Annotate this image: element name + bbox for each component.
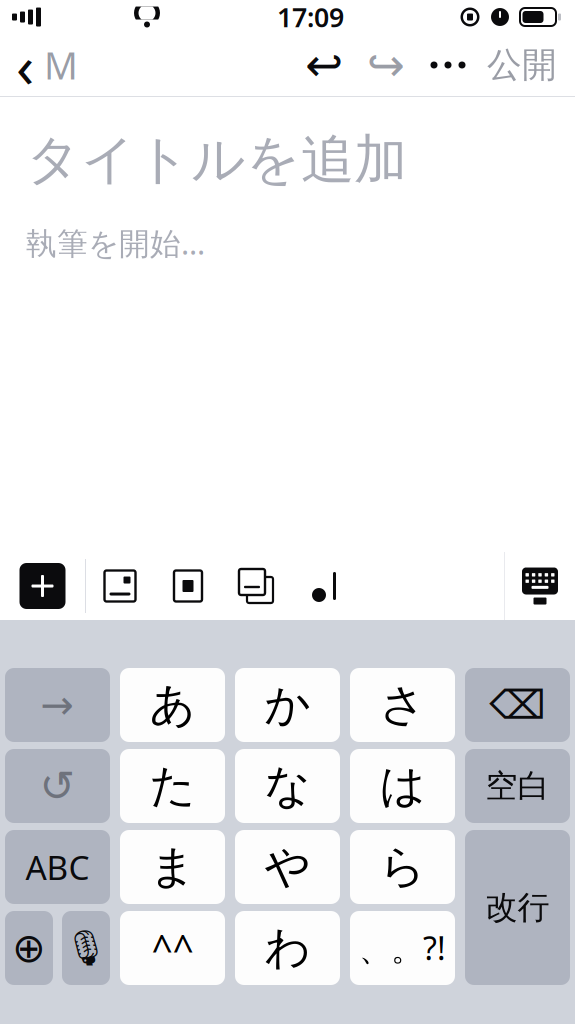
staticText: 執筆を開始... [26,222,205,263]
button[interactable]: わ [235,911,340,985]
button[interactable]: → [5,668,110,742]
button[interactable]: Add block [0,552,85,620]
staticText: ま [149,839,195,895]
button[interactable]: た [120,749,225,823]
button[interactable]: More options [417,34,479,96]
staticText: ‹ [16,26,34,104]
button[interactable]: 空白 [465,749,570,823]
staticText: ⊕ [12,925,46,971]
staticText: な [264,758,310,814]
button[interactable]: 🎙 [62,911,110,985]
staticText: ABC [25,845,89,889]
staticText: か [264,677,310,733]
staticText: ^^ [151,923,193,973]
button[interactable]: や [235,830,340,904]
button[interactable]: Redo [355,34,417,96]
button[interactable]: Hide keyboard [505,552,575,620]
button[interactable]: ら [350,830,455,904]
staticText: → [40,682,74,728]
button[interactable]: Insert audio [290,552,358,620]
button[interactable]: 公開 [479,34,575,96]
staticText: 空白 [485,766,549,806]
staticText: 🎙 [64,928,108,968]
button[interactable]: 改行 [465,830,570,985]
button[interactable]: Insert gallery [222,552,290,620]
button[interactable]: ^^ [120,911,225,985]
button[interactable]: あ [120,668,225,742]
staticText: 改行 [485,888,549,927]
staticText: さ [379,677,425,733]
button[interactable]: さ [350,668,455,742]
staticText: ら [379,839,425,895]
staticText: 公開 [487,44,557,86]
button[interactable]: ⊕ [5,911,53,985]
button[interactable]: Insert image [86,552,154,620]
staticText: 、。?! [359,927,446,969]
staticText: ↩ [305,39,343,91]
button[interactable]: ま [120,830,225,904]
button[interactable]: ⌫ [465,668,570,742]
button[interactable]: は [350,749,455,823]
staticText: ⌫ [489,682,546,728]
button[interactable]: か [235,668,340,742]
staticText: は [379,758,425,814]
staticText: ↪ [367,39,405,91]
staticText: た [149,758,195,814]
button[interactable]: ‹ [0,34,88,96]
staticText: タイトルを追加 [26,127,407,192]
button[interactable]: ABC [5,830,110,904]
staticText: わ [264,920,310,976]
staticText: や [264,839,310,895]
staticText: M [44,40,78,90]
button[interactable]: な [235,749,340,823]
staticText: ↺ [39,762,75,810]
button[interactable]: 、。?! [350,911,455,985]
button[interactable]: Undo [293,34,355,96]
button[interactable]: Insert video [154,552,222,620]
button[interactable]: ↺ [5,749,110,823]
staticText: 17:09 [277,0,344,35]
staticText: あ [149,677,195,733]
